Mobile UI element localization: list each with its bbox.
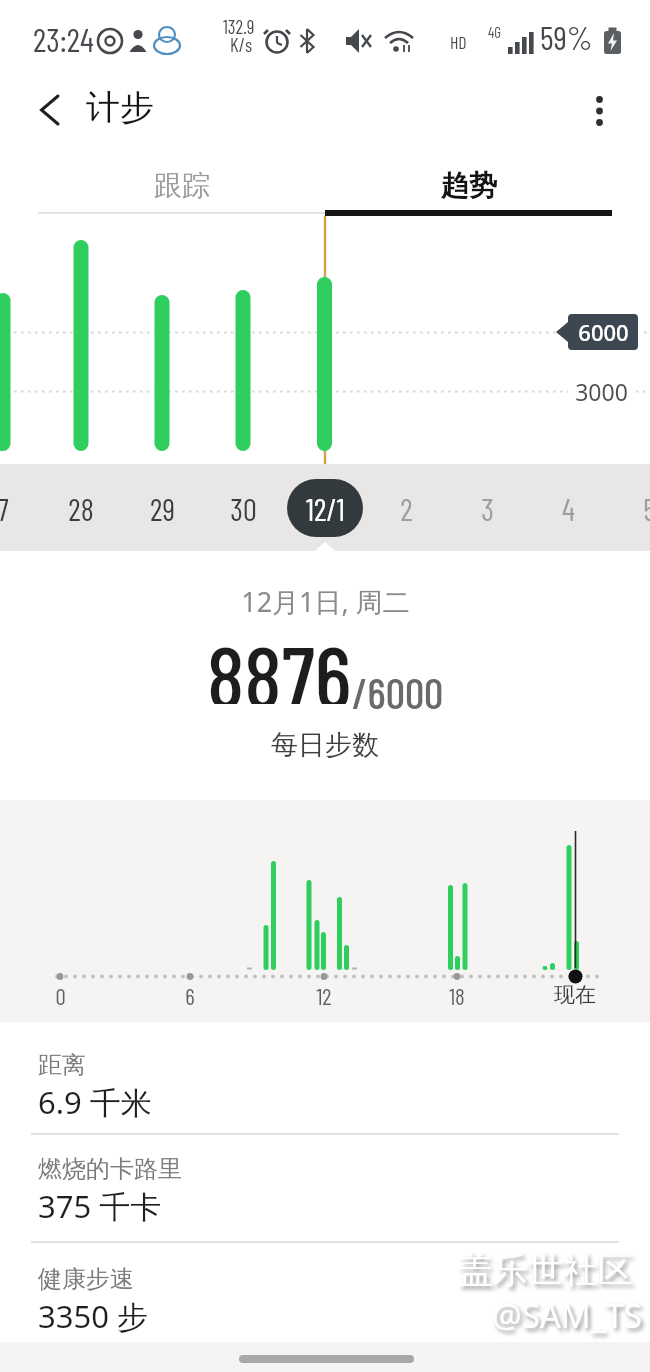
staticText: 3 xyxy=(481,490,494,527)
staticText: 0 xyxy=(55,982,66,1008)
staticText: 59% xyxy=(540,17,593,57)
staticText: 现在 xyxy=(554,982,596,1008)
button[interactable]: 趋势 xyxy=(325,159,612,211)
staticText: 计步 xyxy=(86,86,154,129)
staticText: 3000 xyxy=(575,376,628,407)
button[interactable]: 跟踪 xyxy=(38,159,325,211)
button[interactable]: 12/1 xyxy=(287,479,363,537)
staticText: 健康步速 xyxy=(38,1264,134,1294)
staticText: 7 xyxy=(0,490,9,527)
button[interactable]: 3 xyxy=(0,0,60,38)
button[interactable] xyxy=(239,1355,414,1363)
button[interactable]: 燃烧的卡路里 xyxy=(0,1135,650,1241)
staticText: 8876 xyxy=(207,622,352,704)
staticText: 132.9 xyxy=(223,15,255,38)
staticText: 趋势 xyxy=(441,168,497,203)
staticText: 3350 步 xyxy=(38,1295,148,1337)
staticText: 30 xyxy=(230,490,257,527)
staticText: 28 xyxy=(68,490,94,527)
staticText: 29 xyxy=(150,490,175,527)
staticText: HD xyxy=(450,31,467,53)
staticText: 12 xyxy=(316,982,332,1008)
button[interactable] xyxy=(28,88,72,132)
staticText: 2 xyxy=(400,490,413,527)
button[interactable]: 2 xyxy=(0,0,60,38)
staticText: 6 xyxy=(185,982,195,1008)
button[interactable]: 距离 xyxy=(0,1036,650,1133)
button[interactable]: 30 xyxy=(0,0,60,38)
staticText: @SAM_TS xyxy=(492,1293,642,1338)
staticText: 盖乐世社区 xyxy=(458,1248,633,1292)
staticText: 23:24 xyxy=(33,19,94,59)
button[interactable]: 28 xyxy=(0,0,60,38)
button[interactable]: 29 xyxy=(0,0,60,38)
button[interactable]: 5 xyxy=(0,0,40,38)
staticText: 燃烧的卡路里 xyxy=(38,1154,182,1184)
staticText: 12月1日, 周二 xyxy=(241,583,410,619)
staticText: 375 千卡 xyxy=(38,1185,162,1227)
button[interactable]: 健康步速 xyxy=(0,1243,650,1349)
staticText: 6.9 千米 xyxy=(38,1081,152,1123)
staticText: 12/1 xyxy=(306,490,345,527)
staticText: 18 xyxy=(449,982,465,1008)
staticText: 4 xyxy=(562,490,575,527)
staticText: 5 xyxy=(643,490,650,527)
staticText: /6000 xyxy=(352,666,444,718)
staticText: 跟踪 xyxy=(154,168,210,203)
button[interactable]: 4 xyxy=(0,0,60,38)
staticText: 6000 xyxy=(578,317,629,347)
staticText: 4G xyxy=(488,23,501,41)
staticText: 距离 xyxy=(38,1050,86,1080)
button[interactable] xyxy=(578,88,622,132)
staticText: K/s xyxy=(230,33,253,56)
staticText: 每日步数 xyxy=(271,728,379,762)
button[interactable]: 7 xyxy=(0,0,40,38)
